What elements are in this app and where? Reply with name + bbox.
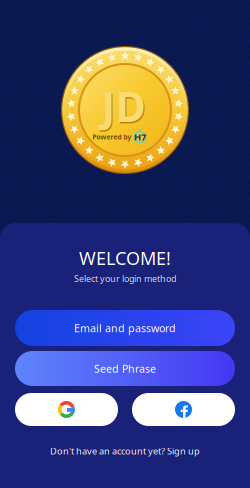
staticText: Don't have an account yet? Sign up [50, 445, 200, 457]
button[interactable]: Email and password [15, 310, 235, 346]
staticText: H7 [134, 130, 146, 143]
button[interactable]: Seed Phrase [15, 351, 235, 386]
button[interactable]: Sign in with Google [15, 393, 118, 426]
staticText: JD [101, 78, 145, 134]
button[interactable]: Sign in with Facebook [132, 393, 235, 426]
staticText: JD [103, 79, 147, 136]
staticText: Email and password [74, 321, 176, 335]
staticText: Powered by [92, 132, 131, 142]
staticText: Seed Phrase [94, 361, 156, 376]
button[interactable]: Don't have an account yet? Sign up [50, 440, 200, 462]
staticText: Select your login method [74, 272, 176, 285]
staticText: WELCOME! [79, 246, 171, 270]
